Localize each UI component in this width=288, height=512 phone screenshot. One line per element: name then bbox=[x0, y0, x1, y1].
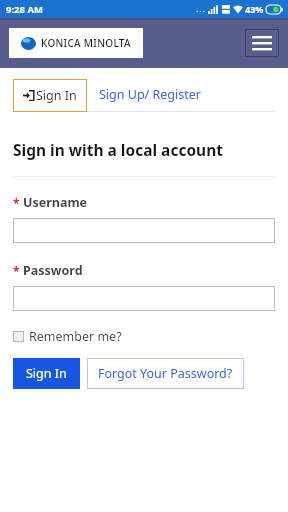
button[interactable]: Menu bbox=[245, 29, 279, 57]
staticText: Sign Up/ Register bbox=[99, 86, 201, 103]
staticText: KONICA MINOLTA bbox=[41, 36, 131, 50]
staticText: * bbox=[13, 263, 20, 279]
staticText: Remember me? bbox=[29, 328, 122, 345]
button[interactable]: Sign Up/ Register bbox=[87, 77, 213, 112]
staticText: 9:28 AM bbox=[6, 3, 43, 16]
button[interactable]: Konica Minolta home bbox=[9, 28, 143, 58]
button[interactable] bbox=[13, 286, 275, 311]
staticText: Sign in with a local account bbox=[13, 139, 223, 160]
staticText: Sign In bbox=[26, 365, 67, 382]
button[interactable]: Forgot Your Password? bbox=[87, 358, 244, 389]
button[interactable]: Sign In bbox=[13, 358, 80, 389]
staticText: 43% bbox=[245, 3, 264, 15]
button[interactable]: Sign In bbox=[13, 79, 87, 112]
button[interactable] bbox=[13, 218, 275, 243]
staticText: Sign In bbox=[36, 87, 77, 104]
staticText: * bbox=[13, 195, 20, 211]
staticText: Username bbox=[23, 194, 88, 211]
staticText: Forgot Your Password? bbox=[98, 365, 233, 382]
staticText: Password bbox=[23, 262, 83, 279]
button[interactable]: Remember me? bbox=[13, 328, 122, 345]
